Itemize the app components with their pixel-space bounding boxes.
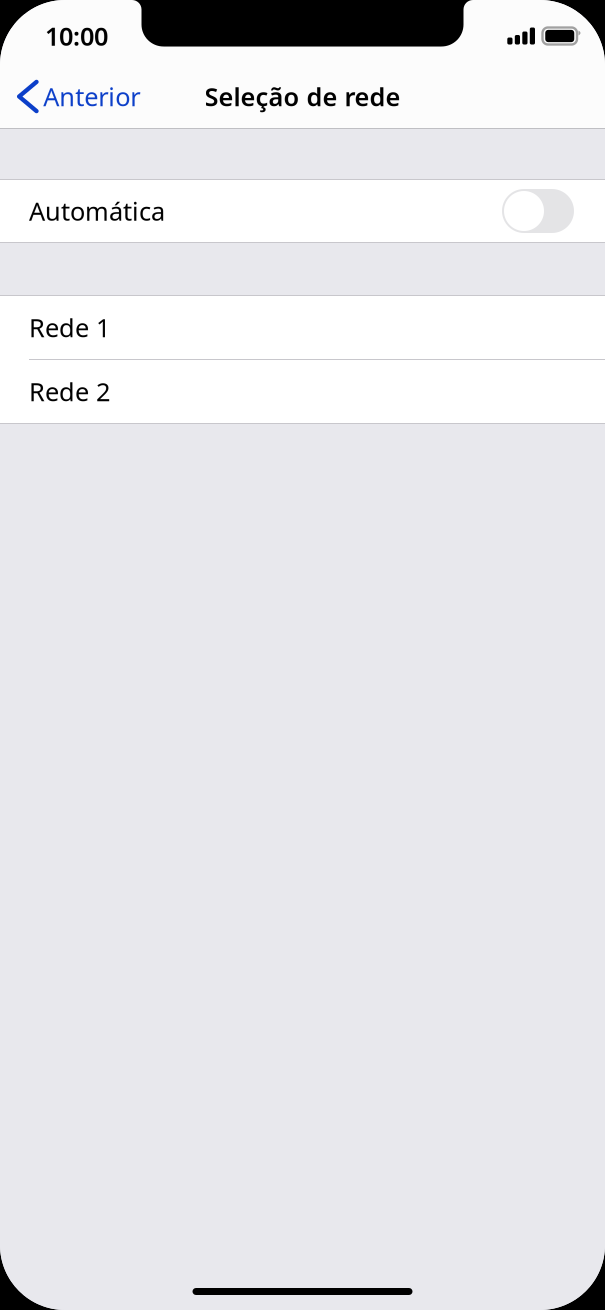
staticText: Seleção de rede: [204, 80, 400, 113]
button[interactable]: Rede 1: [0, 296, 605, 360]
staticText: Rede 2: [29, 375, 110, 408]
staticText: Anterior: [43, 80, 140, 113]
button[interactable]: Automática: [0, 180, 605, 242]
button[interactable]: Rede 2: [0, 360, 605, 423]
staticText: Automática: [29, 194, 165, 228]
staticText: 10:00: [45, 19, 108, 53]
staticText: Rede 1: [29, 311, 110, 344]
button[interactable]: Anterior: [0, 65, 154, 128]
